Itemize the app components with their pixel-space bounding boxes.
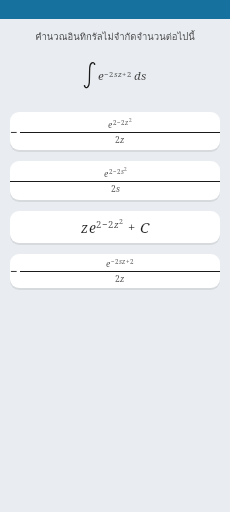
staticText: e — [104, 168, 109, 180]
staticText: 2 — [127, 69, 132, 79]
staticText: − — [10, 262, 18, 280]
staticText: z — [125, 118, 129, 127]
staticText: 2 — [96, 218, 102, 231]
staticText: 2 — [119, 217, 123, 227]
staticText: z — [120, 134, 125, 146]
staticText: e — [108, 119, 113, 131]
staticText: 2 — [109, 167, 113, 176]
staticText: z — [114, 218, 119, 231]
button[interactable]: − — [10, 254, 220, 288]
staticText: 2 — [113, 118, 117, 127]
staticText: − — [10, 123, 18, 141]
staticText: 2 — [111, 183, 116, 195]
staticText: 2 — [115, 257, 119, 266]
staticText: z — [120, 273, 125, 285]
staticText: s — [141, 68, 147, 84]
staticText: s — [119, 257, 122, 266]
staticText: − — [104, 69, 109, 79]
staticText: + — [126, 257, 130, 266]
staticText: z — [118, 69, 122, 79]
staticText: คำนวณอินทิกรัลไม่จำกัดจำนวนต่อไปนี้ — [12, 29, 218, 44]
staticText: z — [81, 218, 89, 237]
staticText: − — [117, 118, 121, 127]
staticText: 2 — [130, 257, 134, 266]
staticText: s — [116, 183, 120, 195]
staticText: s — [121, 167, 124, 176]
staticText: + — [122, 69, 127, 79]
button[interactable]: − — [10, 112, 220, 150]
staticText: 2 — [108, 218, 114, 231]
staticText: 2 — [109, 69, 114, 79]
staticText: C — [140, 217, 150, 237]
staticText: − — [111, 257, 115, 266]
staticText: s — [114, 69, 118, 79]
button[interactable]: z — [10, 211, 220, 243]
staticText: e — [106, 258, 111, 270]
staticText: 2 — [124, 166, 127, 173]
staticText: − — [102, 218, 108, 231]
staticText: 2 — [115, 134, 120, 146]
staticText: 2 — [129, 117, 132, 124]
staticText: 2 — [121, 118, 125, 127]
staticText: 2 — [115, 273, 120, 285]
button[interactable]: e — [10, 161, 220, 200]
staticText: z — [122, 257, 126, 266]
staticText: + — [128, 218, 136, 236]
staticText: d — [134, 68, 141, 84]
staticText: e — [98, 68, 104, 84]
staticText: 2 — [117, 167, 121, 176]
staticText: − — [113, 167, 117, 176]
staticText: e — [89, 218, 96, 237]
